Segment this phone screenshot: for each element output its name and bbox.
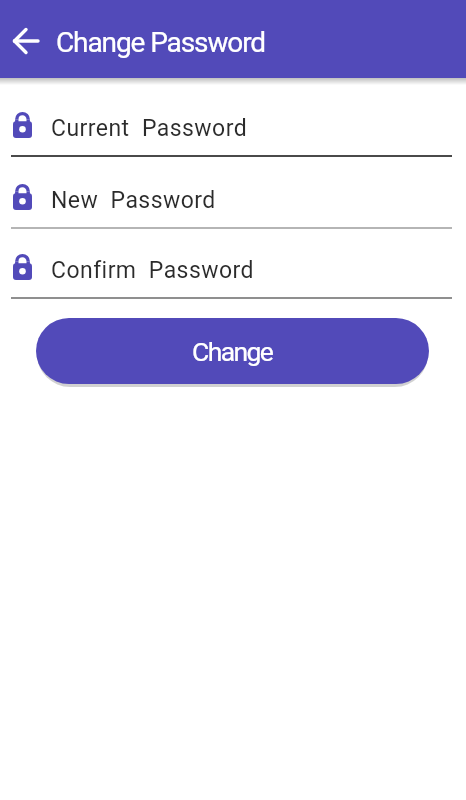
button[interactable]: New Password [0,159,466,229]
staticText: New Password [51,187,216,214]
staticText: Change [192,336,273,367]
staticText: Current Password [51,115,248,142]
button[interactable]: Change [36,318,429,384]
staticText: Confirm Password [51,257,254,284]
staticText: Change Password [56,26,266,59]
button[interactable]: Current Password [0,87,466,157]
button[interactable] [6,21,46,61]
button[interactable]: Confirm Password [0,229,466,299]
